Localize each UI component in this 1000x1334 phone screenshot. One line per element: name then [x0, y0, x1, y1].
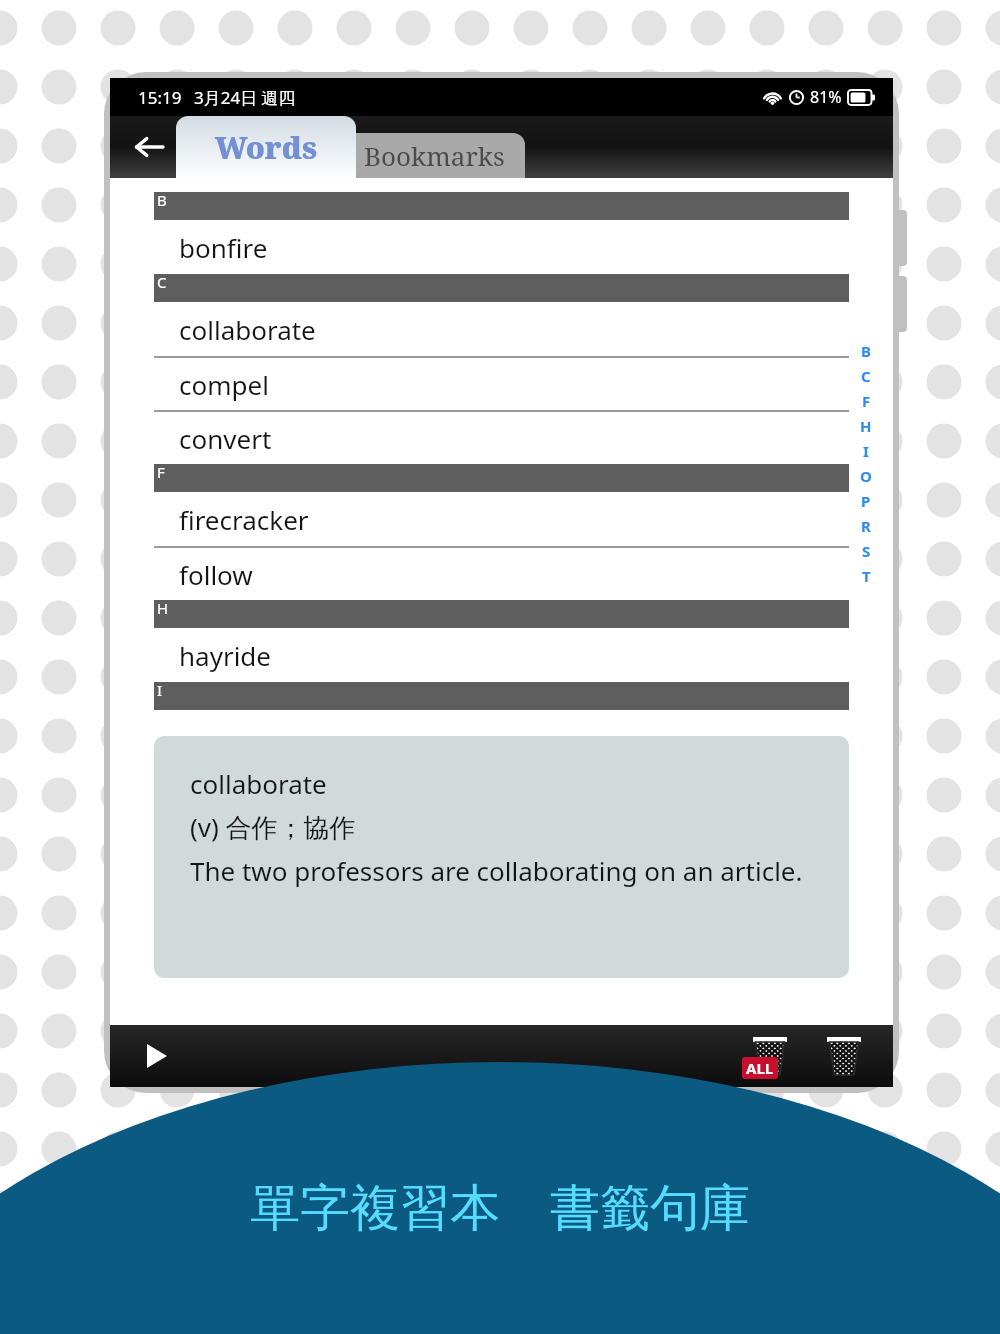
button[interactable]: Play [128, 1027, 186, 1085]
button[interactable]: follow [154, 548, 849, 600]
staticText: C [157, 272, 167, 292]
staticText: T [862, 566, 871, 586]
button[interactable]: F [154, 464, 849, 492]
staticText: firecracker [179, 502, 309, 537]
staticText: 單字複習本 書籤句庫 [250, 1172, 750, 1240]
staticText: convert [179, 421, 272, 456]
staticText: B [157, 190, 167, 210]
staticText: R [861, 516, 871, 536]
staticText: H [860, 416, 872, 436]
staticText: S [862, 541, 871, 561]
staticText: B [861, 341, 871, 361]
button[interactable]: hayride [154, 628, 849, 682]
button[interactable]: B [856, 338, 876, 363]
staticText: hayride [179, 638, 272, 673]
staticText: H [157, 598, 169, 618]
staticText: (v) 合作；協作 [190, 809, 356, 845]
button[interactable]: I [856, 438, 876, 463]
button[interactable]: collaborate [154, 736, 849, 978]
button[interactable]: Delete [815, 1027, 873, 1085]
button[interactable]: O [856, 463, 876, 488]
button[interactable]: compel [154, 358, 849, 410]
button[interactable]: Words [176, 116, 356, 178]
staticText: The two professors are collaborating on … [190, 853, 803, 888]
staticText: Bookmarks [364, 138, 505, 173]
button[interactable]: H [154, 600, 849, 628]
button[interactable]: P [856, 488, 876, 513]
staticText: follow [179, 557, 253, 592]
button[interactable]: B [154, 192, 849, 220]
button[interactable]: collaborate [154, 302, 849, 356]
staticText: C [861, 366, 871, 386]
staticText: collaborate [179, 312, 316, 347]
staticText: F [157, 462, 165, 482]
button[interactable]: C [856, 363, 876, 388]
staticText: O [860, 466, 872, 486]
staticText: I [157, 680, 163, 700]
staticText: collaborate [190, 766, 327, 801]
button[interactable]: Bookmarks [343, 133, 525, 178]
button[interactable]: firecracker [154, 492, 849, 546]
button[interactable]: bonfire [154, 220, 849, 274]
button[interactable]: I [154, 682, 849, 710]
button[interactable]: H [856, 413, 876, 438]
button[interactable]: R [856, 513, 876, 538]
button[interactable]: Delete all [741, 1027, 799, 1085]
staticText: Words [215, 127, 317, 168]
staticText: F [862, 391, 871, 411]
staticText: 81% [810, 86, 842, 108]
staticText: bonfire [179, 230, 268, 265]
staticText: compel [179, 367, 269, 402]
button[interactable]: convert [154, 412, 849, 464]
staticText: 15:19 [138, 86, 182, 109]
button[interactable]: C [154, 274, 849, 302]
button[interactable]: S [856, 538, 876, 563]
staticText: P [861, 491, 871, 511]
button[interactable]: Back [120, 118, 178, 176]
staticText: I [863, 441, 869, 461]
staticText: 3月24日 週四 [194, 86, 296, 109]
button[interactable]: F [856, 388, 876, 413]
staticText: ALL [746, 1058, 774, 1078]
button[interactable]: T [856, 563, 876, 588]
